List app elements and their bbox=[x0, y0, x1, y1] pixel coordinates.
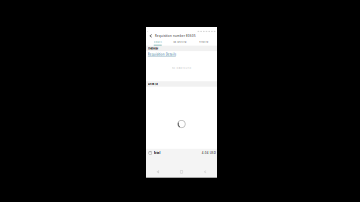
staticText: 4.04 USD bbox=[202, 151, 216, 155]
button[interactable]: Requisition Details bbox=[148, 52, 176, 56]
button[interactable]: Timeline bbox=[191, 40, 215, 46]
staticText: Requisition number 80605 bbox=[155, 34, 196, 38]
staticText: Lines (0) bbox=[148, 82, 158, 86]
staticText: Timeline bbox=[199, 40, 208, 43]
staticText: Requisition Details bbox=[148, 52, 176, 56]
staticText: Details bbox=[154, 40, 162, 43]
button[interactable]: Details bbox=[148, 40, 167, 46]
staticText: Total bbox=[154, 151, 161, 155]
staticText: No data found bbox=[171, 66, 191, 70]
staticText: Ads Servicing bbox=[173, 40, 186, 43]
button[interactable]: Back bbox=[146, 169, 170, 174]
button[interactable]: Recents bbox=[193, 169, 217, 174]
button[interactable]: Home bbox=[170, 169, 193, 174]
button[interactable]: Back bbox=[148, 32, 154, 40]
staticText: Overview bbox=[148, 47, 158, 50]
button[interactable]: Ads Servicing bbox=[167, 40, 191, 46]
